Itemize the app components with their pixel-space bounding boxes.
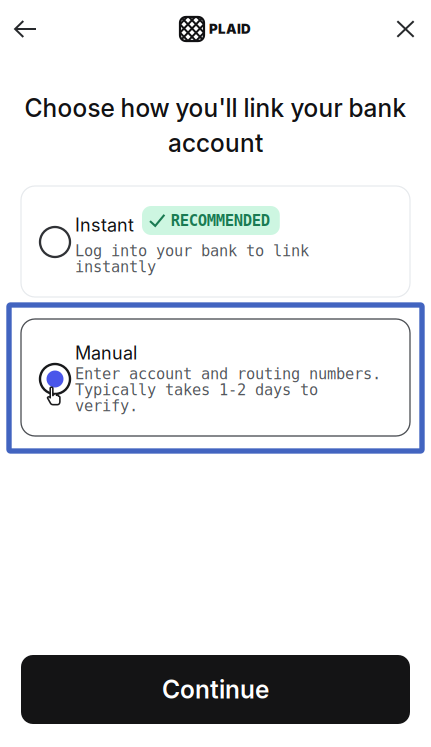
staticText: account: [168, 128, 263, 158]
button[interactable]: Manual: [9, 305, 422, 451]
button[interactable]: Back: [2, 6, 48, 52]
staticText: Enter account and routing numbers.: [75, 365, 381, 383]
staticText: Log into your bank to link: [75, 242, 309, 260]
staticText: instantly: [75, 258, 156, 276]
staticText: Instant: [75, 214, 134, 236]
staticText: verify.: [75, 397, 138, 415]
staticText: Continue: [162, 675, 269, 704]
staticText: Manual: [75, 342, 137, 364]
button[interactable]: Instant: [21, 186, 410, 297]
staticText: Typically takes 1-2 days to: [75, 381, 318, 399]
button[interactable]: Continue: [21, 655, 410, 724]
button[interactable]: Close: [382, 6, 428, 52]
staticText: PLAID: [209, 21, 251, 37]
staticText: Choose how you'll link your bank: [24, 93, 406, 123]
staticText: RECOMMENDED: [171, 211, 270, 230]
